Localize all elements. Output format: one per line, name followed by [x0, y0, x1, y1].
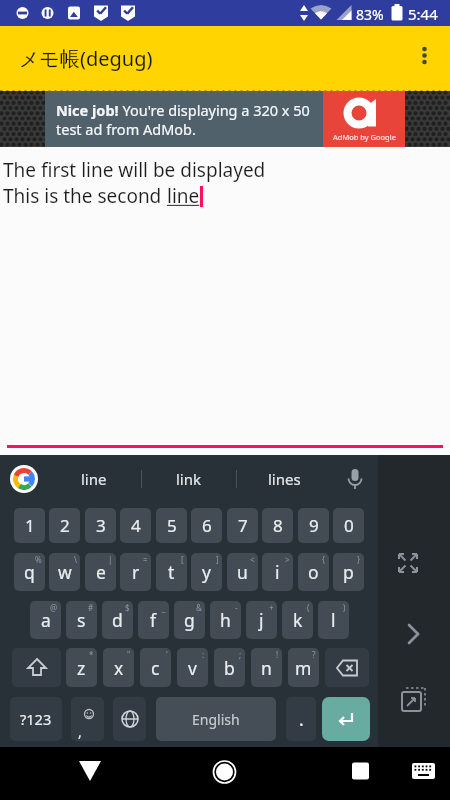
- staticText: v: [188, 656, 197, 680]
- button[interactable]: [0, 455, 47, 502]
- button[interactable]: Nice job! You're displaying a 320 x 50 t…: [0, 91, 450, 147]
- staticText: q: [24, 560, 35, 584]
- staticText: c: [151, 656, 160, 680]
- button[interactable]: j: [246, 601, 277, 639]
- staticText: !: [276, 649, 279, 660]
- staticText: m: [295, 656, 312, 680]
- staticText: z: [77, 656, 86, 680]
- button[interactable]: link: [142, 455, 236, 502]
- button[interactable]: g: [174, 601, 205, 639]
- staticText: 4: [131, 514, 141, 537]
- button[interactable]: line: [47, 455, 141, 502]
- button[interactable]: ?123: [10, 697, 62, 741]
- button[interactable]: s: [66, 601, 97, 639]
- staticText: $: [125, 602, 130, 613]
- staticText: ': [166, 649, 168, 660]
- staticText: @: [50, 602, 58, 613]
- staticText: &: [196, 602, 202, 613]
- button[interactable]: o: [298, 553, 329, 591]
- button[interactable]: 4: [120, 508, 151, 543]
- button[interactable]: [68, 752, 112, 796]
- staticText: 0: [344, 514, 354, 537]
- staticText: 6: [202, 514, 212, 537]
- staticText: #: [88, 602, 94, 613]
- staticText: :: [202, 649, 205, 660]
- button[interactable]: [113, 697, 146, 741]
- button[interactable]: 7: [227, 508, 258, 543]
- staticText: AdMob by Google: [333, 132, 396, 142]
- button[interactable]: 8: [262, 508, 293, 543]
- staticText: t: [168, 560, 175, 584]
- staticText: \: [74, 554, 77, 565]
- button[interactable]: k: [282, 601, 313, 639]
- staticText: o: [308, 560, 319, 584]
- button[interactable]: .: [286, 697, 316, 741]
- staticText: <: [250, 554, 255, 565]
- button[interactable]: [12, 648, 61, 687]
- staticText: n: [261, 656, 272, 680]
- staticText: link: [176, 469, 202, 489]
- button[interactable]: n: [251, 648, 282, 687]
- button[interactable]: [325, 648, 369, 687]
- button[interactable]: c: [140, 648, 171, 687]
- button[interactable]: q: [14, 553, 45, 591]
- button[interactable]: lines: [237, 455, 331, 502]
- staticText: >: [285, 554, 290, 565]
- staticText: line: [81, 469, 107, 489]
- staticText: b: [224, 656, 235, 680]
- staticText: i: [275, 560, 280, 584]
- staticText: This is the second: [3, 183, 167, 209]
- button[interactable]: [401, 752, 445, 796]
- button[interactable]: z: [66, 648, 97, 687]
- button[interactable]: t: [156, 553, 187, 591]
- staticText: lines: [268, 469, 301, 489]
- button[interactable]: l: [318, 601, 349, 639]
- button[interactable]: e: [85, 553, 116, 591]
- staticText: a: [41, 608, 51, 632]
- staticText: p: [343, 560, 354, 584]
- button[interactable]: p: [333, 553, 364, 591]
- button[interactable]: x: [103, 648, 134, 687]
- staticText: d: [112, 608, 123, 632]
- button[interactable]: [338, 752, 382, 796]
- button[interactable]: 5: [156, 508, 187, 543]
- button[interactable]: [322, 697, 370, 741]
- button[interactable]: m: [288, 648, 319, 687]
- staticText: [: [181, 554, 184, 565]
- button[interactable]: [209, 752, 253, 796]
- staticText: ?123: [20, 709, 52, 729]
- button[interactable]: 6: [191, 508, 222, 543]
- staticText: .: [299, 707, 304, 731]
- button[interactable]: 9: [298, 508, 329, 543]
- button[interactable]: 3: [85, 508, 116, 543]
- staticText: =: [143, 554, 148, 565]
- button[interactable]: d: [102, 601, 133, 639]
- staticText: _: [162, 602, 166, 613]
- staticText: k: [293, 608, 303, 632]
- button[interactable]: [402, 26, 450, 91]
- button[interactable]: a: [30, 601, 61, 639]
- button[interactable]: f: [138, 601, 169, 639]
- button[interactable]: 2: [49, 508, 80, 543]
- button[interactable]: u: [227, 553, 258, 591]
- button[interactable]: 0: [333, 508, 364, 543]
- button[interactable]: English: [156, 697, 276, 741]
- staticText: |: [108, 554, 113, 565]
- button[interactable]: y: [191, 553, 222, 591]
- staticText: 5:44: [408, 4, 438, 24]
- button[interactable]: i: [262, 553, 293, 591]
- button[interactable]: w: [49, 553, 80, 591]
- staticText: 2: [60, 514, 70, 537]
- button[interactable]: 1: [14, 508, 45, 543]
- staticText: (: [307, 602, 310, 613]
- button[interactable]: ,: [71, 697, 104, 741]
- button[interactable]: b: [214, 648, 245, 687]
- button[interactable]: h: [210, 601, 241, 639]
- button[interactable]: v: [177, 648, 208, 687]
- button[interactable]: [331, 455, 378, 502]
- staticText: 1: [25, 514, 35, 537]
- staticText: }: [357, 554, 361, 565]
- button[interactable]: r: [120, 553, 151, 591]
- staticText: 8: [273, 514, 283, 537]
- staticText: 3: [96, 514, 106, 537]
